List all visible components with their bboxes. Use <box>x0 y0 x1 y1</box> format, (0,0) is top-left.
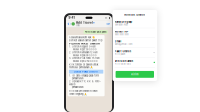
staticText: Pilih salah satu <box>115 63 131 65</box>
staticText: Mulai Rp27.500.000 <box>69 48 97 51</box>
staticText: Adit Travel <box>76 21 93 24</box>
staticText: PILIHAN PAKET UMROH <box>69 42 100 45</box>
staticText: 2. Umroh Ramadan 12 Hari <box>69 51 98 54</box>
staticText: Mulai Rp42.500.000 <box>69 60 98 62</box>
staticText: Nama Lengkap <box>115 20 133 23</box>
staticText: Email <box>115 40 122 43</box>
button[interactable]: Nomor HP <box>112 28 157 38</box>
staticText: Bila ada pertanyaan silakan <box>69 89 97 92</box>
staticText: tanya langsung 🙏 <box>69 92 87 95</box>
staticText: pendaftaran <box>69 86 83 89</box>
button[interactable]: Kirim <box>116 71 154 78</box>
staticText: Nomor HP <box>115 30 129 33</box>
staticText: Pilih paket <box>115 53 126 55</box>
button[interactable]: Video call <box>106 23 110 25</box>
button[interactable]: Back <box>68 22 71 25</box>
staticText: Daftar Paket Umroh <box>74 70 98 73</box>
staticText: Permintaan data paket <box>85 31 107 33</box>
staticText: Klik tombol di bawah untuk <box>69 63 98 66</box>
staticText: nama@email.com <box>115 43 133 46</box>
staticText: Jenis Kelamin <box>115 59 134 63</box>
staticText: ıll ▮ <box>105 16 110 19</box>
button[interactable]: Nama Lengkap <box>112 18 157 28</box>
staticText: 1. Umroh Reguler 9 Hari <box>69 45 96 48</box>
staticText: online <box>76 24 80 27</box>
staticText: Berikut adalah daftar paket trip <box>69 39 102 42</box>
staticText: Assalamualaikum kak 👋 <box>69 36 95 39</box>
staticText: pendaftaran <box>69 77 83 80</box>
staticText: 9:41 <box>68 16 74 19</box>
staticText: Form BK umroh <box>124 13 145 16</box>
button[interactable]: Paket Umroh <box>112 48 157 58</box>
staticText: Paket Umroh <box>115 50 132 53</box>
staticText: 3. Umroh Plus Turki 15 Hari <box>69 57 100 60</box>
button[interactable]: Email <box>112 38 157 48</box>
staticText: 2. Upload KTP, KK & Foto - Wajib <box>69 80 101 86</box>
staticText: 08xx xxxx xxxx <box>115 33 129 36</box>
staticText: memulai pemesanan 🙏 <box>69 66 93 69</box>
staticText: Kirim <box>131 73 138 76</box>
staticText: Jawaban Anda <box>115 23 128 26</box>
staticText: Mulai Rp38.900.000 <box>69 54 97 57</box>
button[interactable]: Jenis Kelamin <box>112 58 157 67</box>
staticText: 1. Isi data lengkap pada form <box>69 74 99 77</box>
